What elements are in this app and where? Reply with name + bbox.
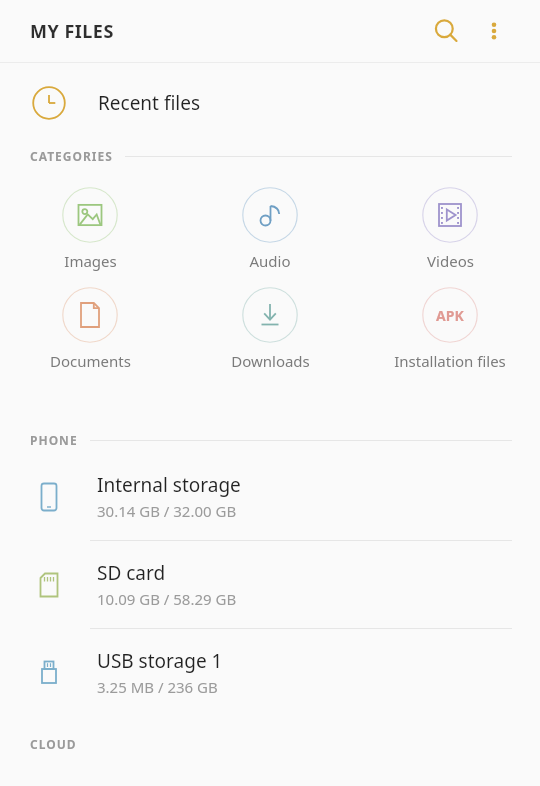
staticText: Installation files: [394, 351, 506, 371]
staticText: Images: [64, 251, 117, 271]
button[interactable]: APK: [364, 285, 536, 373]
staticText: PHONE: [30, 432, 78, 448]
staticText: USB storage 1: [97, 648, 223, 674]
button[interactable]: More options: [472, 9, 516, 53]
staticText: CLOUD: [30, 736, 77, 752]
staticText: 3.25 MB / 236 GB: [97, 677, 218, 697]
staticText: CATEGORIES: [30, 148, 113, 164]
button[interactable]: Search: [423, 8, 469, 54]
button[interactable]: Downloads: [184, 285, 356, 373]
staticText: 10.09 GB / 58.29 GB: [97, 589, 237, 609]
button[interactable]: Internal storage: [0, 453, 540, 540]
button[interactable]: USB storage 1: [0, 629, 540, 716]
staticText: Downloads: [231, 351, 310, 371]
staticText: 30.14 GB / 32.00 GB: [97, 501, 237, 521]
staticText: SD card: [97, 560, 166, 586]
staticText: Videos: [427, 251, 474, 271]
button[interactable]: Documents: [4, 285, 176, 373]
button[interactable]: SD card: [0, 541, 540, 628]
button[interactable]: Recent files: [0, 63, 540, 143]
staticText: Documents: [50, 351, 131, 371]
staticText: Recent files: [98, 90, 201, 116]
staticText: Internal storage: [97, 472, 241, 498]
staticText: Audio: [249, 251, 291, 271]
staticText: APK: [436, 306, 464, 325]
button[interactable]: Audio: [184, 185, 356, 273]
button[interactable]: Videos: [364, 185, 536, 273]
button[interactable]: Images: [4, 185, 176, 273]
staticText: MY FILES: [30, 19, 114, 44]
